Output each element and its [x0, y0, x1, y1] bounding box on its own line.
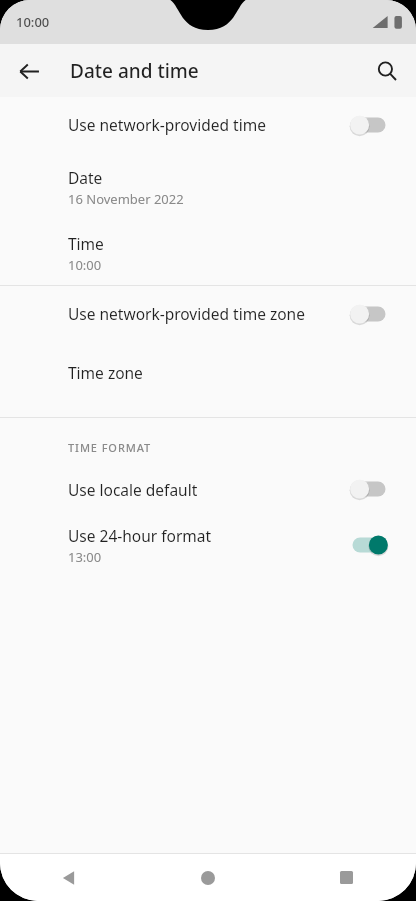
button[interactable]: Use network-provided time	[0, 97, 416, 152]
staticText: 13:00	[68, 548, 102, 566]
staticText: Use network-provided time	[68, 114, 346, 135]
staticText: Date and time	[70, 58, 199, 84]
button[interactable]: On	[346, 532, 392, 558]
button[interactable]: Recent apps	[277, 854, 416, 901]
staticText: Time zone	[68, 362, 143, 383]
staticText: 16 November 2022	[68, 190, 184, 208]
button[interactable]: Use locale default	[0, 463, 416, 515]
button[interactable]: Time zone	[0, 341, 416, 403]
staticText: TIME FORMAT	[68, 440, 152, 455]
button[interactable]: Time	[0, 222, 416, 285]
staticText: 10:00	[16, 13, 50, 31]
button[interactable]: Use 24-hour format	[0, 515, 416, 575]
staticText: Use 24-hour format	[68, 525, 212, 546]
button[interactable]: Off	[346, 476, 392, 502]
button[interactable]: Back	[8, 50, 50, 92]
staticText: Date	[68, 167, 103, 188]
staticText: Time	[68, 233, 104, 254]
button[interactable]: Off	[346, 301, 392, 327]
button[interactable]: Back	[0, 854, 138, 901]
staticText: Use locale default	[68, 479, 346, 500]
button[interactable]: Date	[0, 152, 416, 222]
button[interactable]: Home	[138, 854, 277, 901]
button[interactable]: Search	[366, 50, 408, 92]
staticText: 10:00	[68, 256, 102, 274]
button[interactable]: Off	[346, 112, 392, 138]
button[interactable]: Use network-provided time zone	[0, 286, 416, 341]
staticText: Use network-provided time zone	[68, 303, 346, 324]
